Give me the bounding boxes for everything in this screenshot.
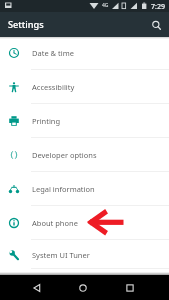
button[interactable]: Legal information xyxy=(0,172,169,206)
button[interactable]: Home xyxy=(72,275,94,300)
staticText: Settings xyxy=(8,18,44,31)
staticText: Printing xyxy=(32,116,61,126)
staticText: Date & time xyxy=(32,48,74,58)
button[interactable]: System UI Tuner xyxy=(0,240,169,269)
staticText: System UI Tuner xyxy=(32,250,90,260)
button[interactable]: Back xyxy=(26,275,48,300)
staticText: Accessibility xyxy=(32,82,75,92)
staticText: Legal information xyxy=(32,184,95,194)
button[interactable]: Developer options xyxy=(0,138,169,172)
button[interactable]: Printing xyxy=(0,104,169,138)
button[interactable]: About phone xyxy=(0,206,169,240)
button[interactable]: Recents xyxy=(119,275,141,300)
staticText: 7:29 xyxy=(151,2,165,12)
staticText: Developer options xyxy=(32,150,97,160)
button[interactable]: Date & time xyxy=(0,36,169,70)
staticText: 4G xyxy=(102,2,109,9)
button[interactable]: Search xyxy=(146,15,166,35)
button[interactable]: Accessibility xyxy=(0,70,169,104)
staticText: About phone xyxy=(32,218,78,228)
